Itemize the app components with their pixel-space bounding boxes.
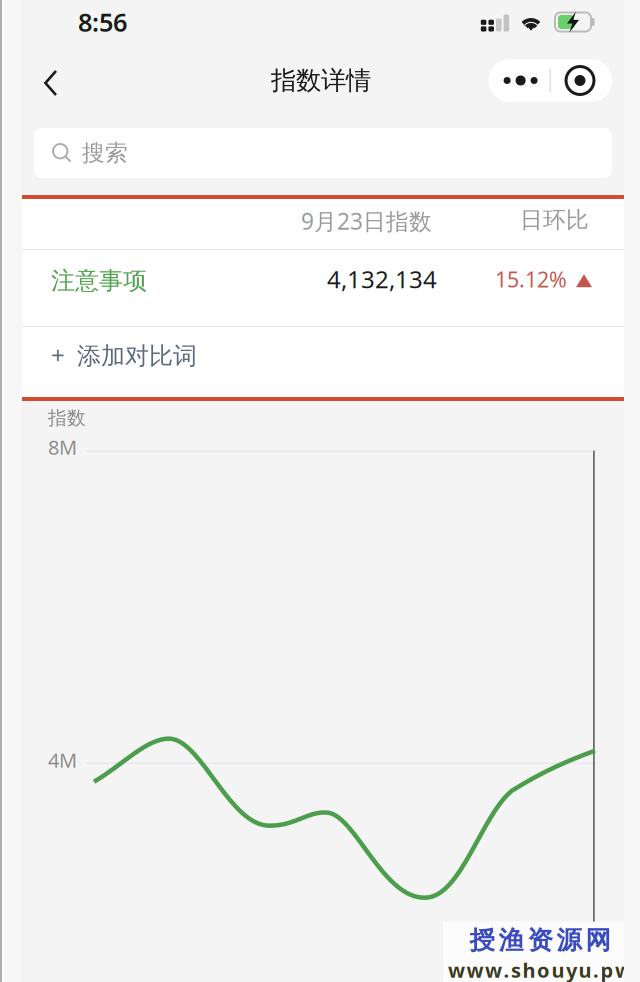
staticText: 指数详情 (271, 65, 371, 96)
staticText: s (511, 957, 521, 982)
staticText: 指数 (48, 407, 86, 430)
staticText: p (600, 957, 613, 982)
staticText: u (551, 957, 564, 982)
staticText: 9月23日指数 (301, 206, 432, 236)
staticText: 4,132,134 (327, 263, 437, 295)
staticText: h (522, 957, 535, 982)
staticText: w (466, 957, 483, 982)
staticText: 网 (585, 925, 610, 956)
button[interactable]: + 添加对比词 (0, 327, 640, 399)
staticText: 8M (48, 434, 77, 460)
staticText: 8:56 (78, 5, 127, 39)
staticText: 注意事项 (51, 266, 147, 296)
staticText: + 添加对比词 (51, 339, 197, 371)
staticText: 15.12% (495, 265, 567, 293)
staticText: 资 (527, 925, 552, 956)
staticText: y (566, 957, 577, 982)
staticText: w (485, 957, 502, 982)
button[interactable]: 关闭小程序 (551, 59, 609, 101)
staticText: . (503, 957, 509, 982)
staticText: 日环比 (520, 206, 589, 234)
staticText: 授 (469, 925, 494, 956)
staticText: . (593, 957, 599, 982)
staticText: 源 (556, 925, 581, 956)
staticText: u (578, 957, 591, 982)
button[interactable]: 返回 (0, 55, 83, 106)
staticText: w (615, 957, 632, 982)
button[interactable]: 更多 (492, 59, 550, 101)
staticText: 搜索 (82, 139, 128, 167)
button[interactable]: 搜索 (0, 117, 640, 197)
staticText: w (448, 957, 465, 982)
staticText: o (537, 957, 550, 982)
staticText: 渔 (498, 925, 523, 956)
staticText: 4M (48, 747, 77, 773)
